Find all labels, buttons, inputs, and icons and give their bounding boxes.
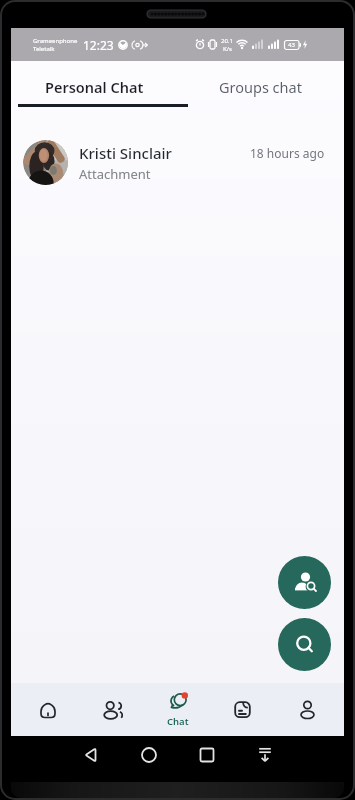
staticText: 18 hours ago [250, 145, 325, 161]
button[interactable] [141, 747, 157, 763]
staticText: Kristi Sinclair [79, 143, 172, 163]
button[interactable] [80, 683, 145, 736]
button[interactable] [278, 618, 331, 671]
staticText: 12:23 [83, 37, 114, 53]
button[interactable]: Groups chat [177, 61, 344, 107]
button[interactable]: Chat [145, 683, 210, 736]
button[interactable] [257, 747, 273, 763]
staticText: 43 [288, 41, 295, 49]
button[interactable] [210, 683, 275, 736]
staticText: 20.1 [221, 37, 233, 45]
button[interactable]: Personal Chat [11, 61, 177, 107]
staticText: Personal Chat [45, 77, 144, 97]
staticText: Teletalk [33, 45, 55, 53]
button[interactable] [83, 747, 99, 763]
button[interactable] [275, 683, 340, 736]
staticText: Attachment [79, 165, 151, 183]
staticText: Groups chat [219, 77, 302, 97]
staticText: K/s [223, 45, 232, 53]
button[interactable]: Kristi Sinclair [23, 140, 344, 185]
button[interactable] [15, 683, 80, 736]
staticText: Grameenphone [33, 37, 78, 45]
button[interactable] [199, 747, 215, 763]
button[interactable] [278, 556, 331, 609]
staticText: Chat [167, 715, 189, 728]
